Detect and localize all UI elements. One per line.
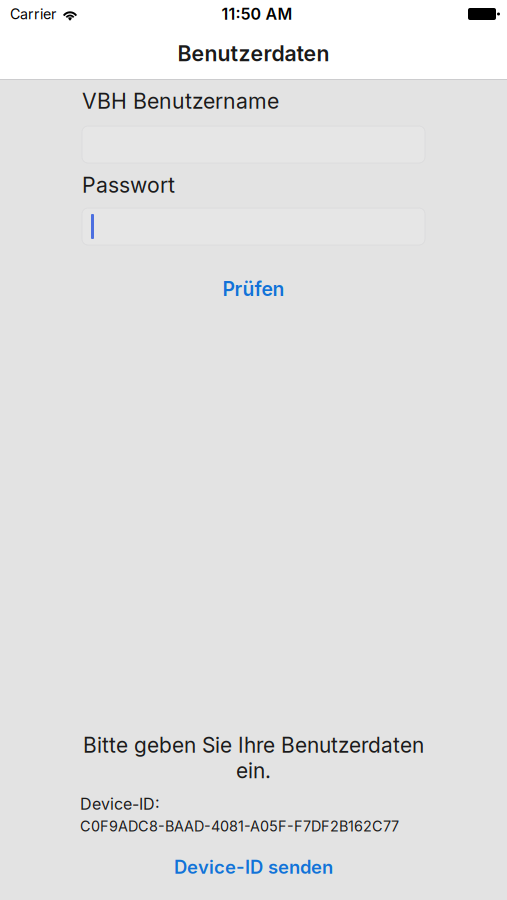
button[interactable]: Prüfen (82, 278, 425, 300)
button[interactable]: Device-ID senden (0, 857, 507, 877)
staticText: VBH Benutzername (82, 88, 279, 114)
staticText: C0F9ADC8-BAAD-4081-A05F-F7DF2B162C77 (80, 818, 399, 835)
staticText: Device-ID: (80, 794, 160, 814)
staticText: Bitte geben Sie Ihre Benutzerdaten (83, 733, 424, 758)
staticText: Carrier (10, 5, 56, 23)
staticText: Prüfen (222, 277, 284, 301)
staticText: 11:50 AM (221, 4, 292, 24)
staticText: Passwort (82, 172, 175, 198)
button[interactable]: Passwort (82, 208, 425, 245)
staticText: Device-ID senden (174, 856, 333, 878)
staticText: Benutzerdaten (177, 41, 329, 66)
staticText: ein. (236, 758, 271, 783)
